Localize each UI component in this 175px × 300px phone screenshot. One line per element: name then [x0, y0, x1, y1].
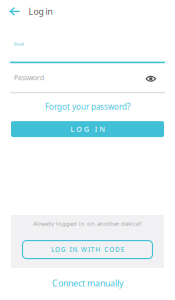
button[interactable]: Forgot your password? — [0, 101, 175, 112]
button[interactable]: LOG IN — [11, 121, 164, 137]
button[interactable]: Connect manually — [0, 277, 175, 289]
staticText: Already logged in on another device? — [33, 219, 142, 228]
staticText: Log in — [28, 6, 52, 17]
button[interactable]: Show password — [146, 73, 175, 82]
staticText: Password — [14, 73, 44, 82]
button[interactable]: LOG IN WITH CODE — [22, 241, 152, 259]
staticText: LOG IN WITH CODE — [51, 245, 124, 254]
button[interactable]: Back — [0, 3, 28, 20]
staticText: Email — [14, 41, 24, 47]
staticText: Connect manually — [52, 277, 123, 289]
staticText: LOG IN — [70, 124, 104, 134]
staticText: Forgot your password? — [45, 101, 130, 112]
